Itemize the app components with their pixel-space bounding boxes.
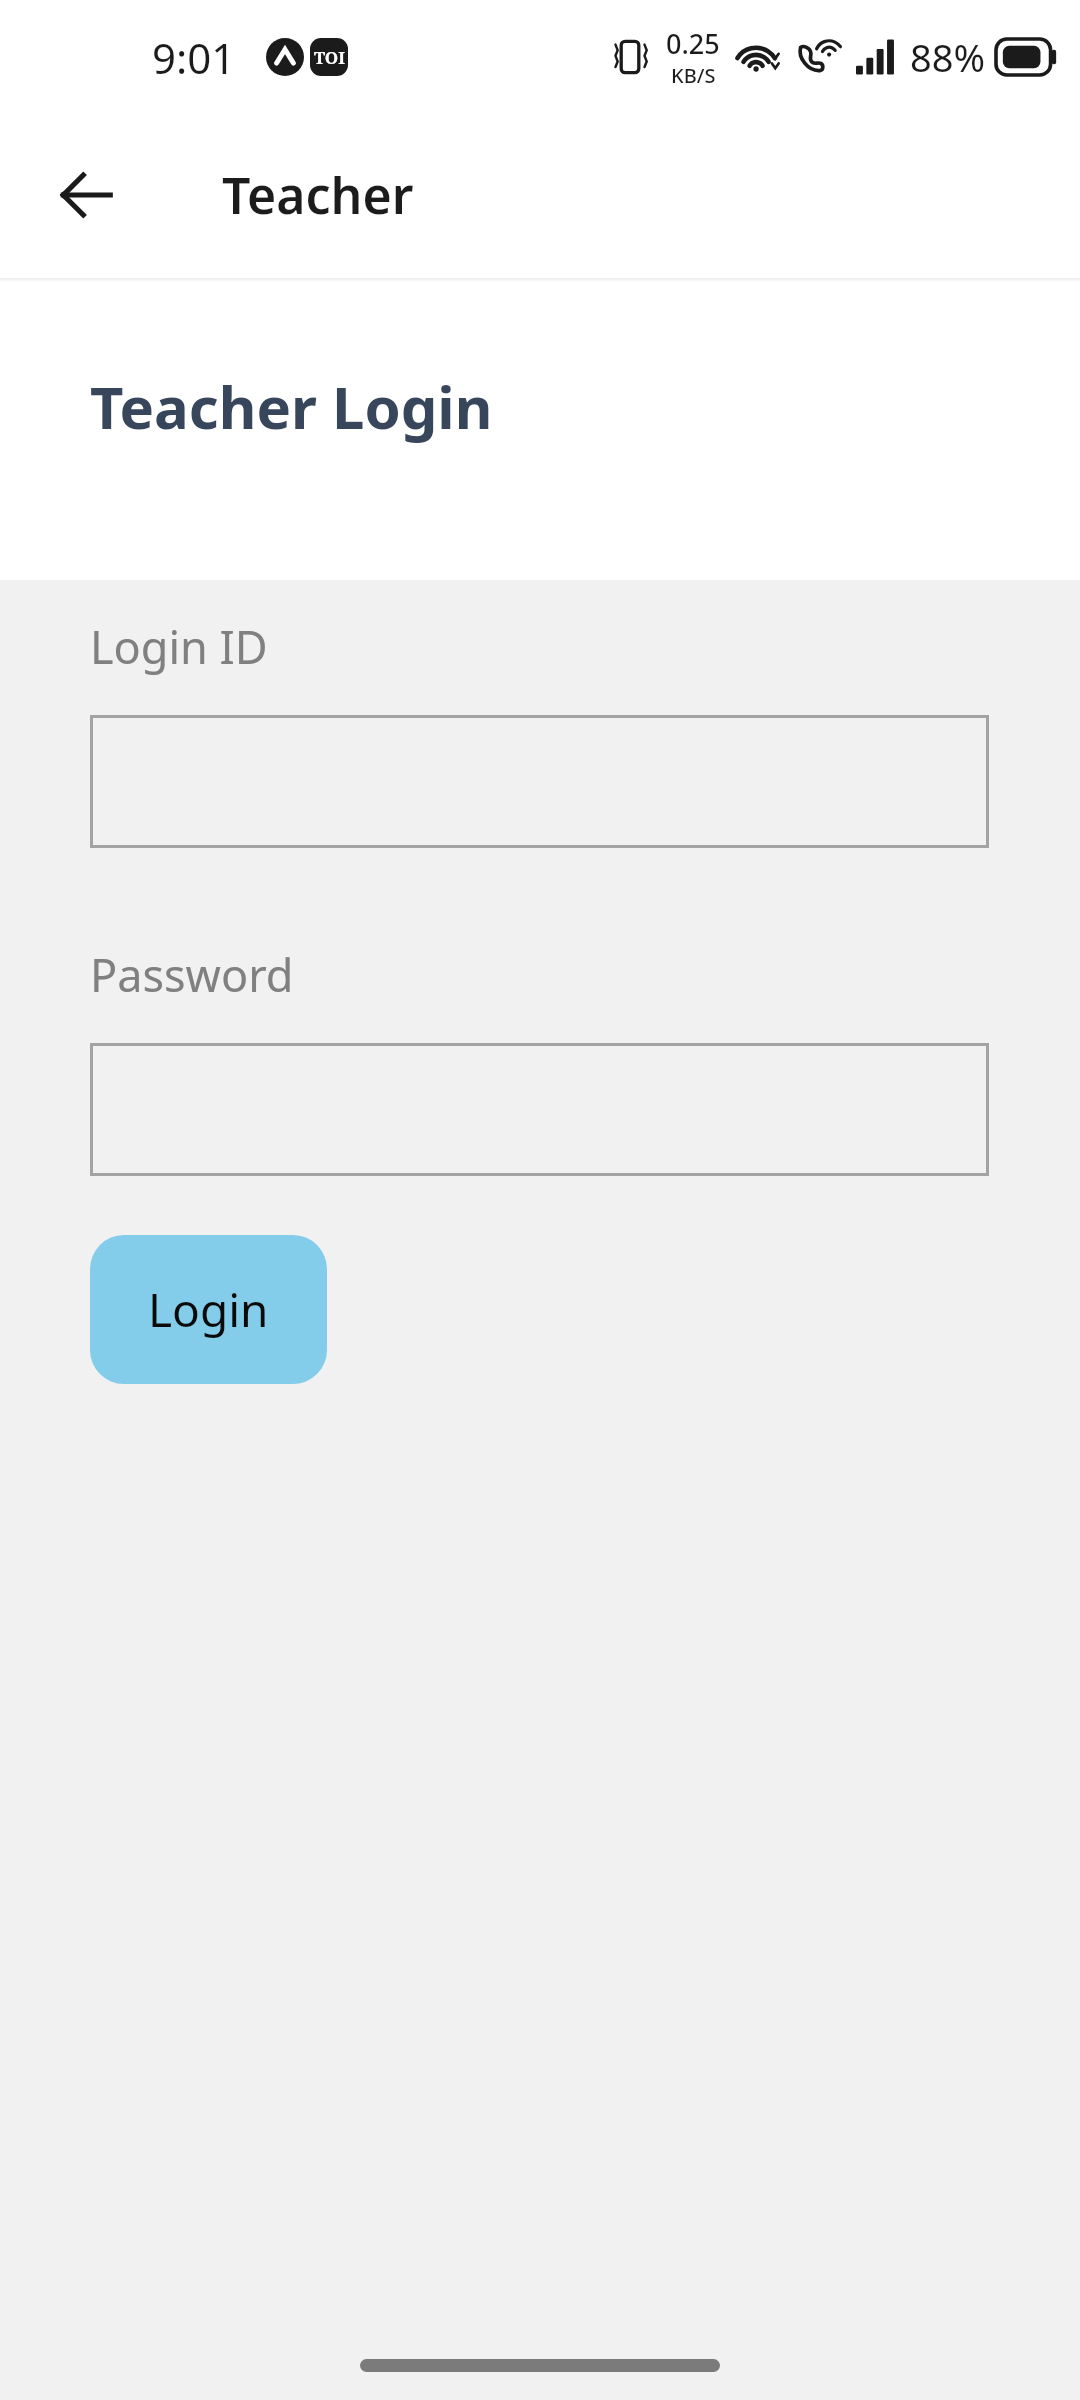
staticText: 9:01 xyxy=(152,29,236,86)
staticText: Teacher Login xyxy=(90,367,493,446)
staticText: TOI xyxy=(314,46,345,69)
staticText: 0.25 xyxy=(666,25,720,62)
button[interactable] xyxy=(90,715,989,848)
staticText: Teacher xyxy=(222,161,414,229)
staticText: Login xyxy=(148,1278,269,1341)
button[interactable] xyxy=(90,1043,989,1176)
staticText: Password xyxy=(90,944,294,1005)
button[interactable]: Back xyxy=(30,139,142,251)
staticText: KB/S xyxy=(671,62,716,89)
staticText: Login ID xyxy=(90,616,268,677)
staticText: 88% xyxy=(910,31,986,83)
button[interactable]: Login xyxy=(90,1235,327,1384)
